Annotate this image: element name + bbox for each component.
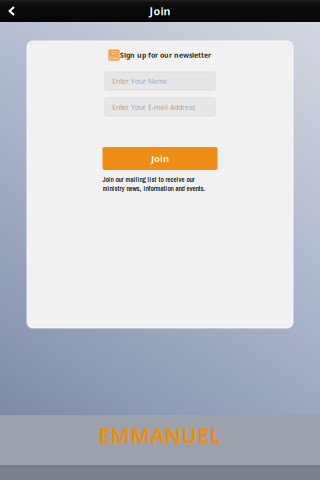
staticText: Join our mailing list to receive our [102, 175, 194, 184]
staticText: Join [149, 4, 170, 18]
staticText: Join [151, 152, 169, 165]
button[interactable]: Back [0, 0, 24, 22]
staticText: ministry news, information and events. [102, 184, 205, 193]
button[interactable]: Join [102, 147, 217, 170]
staticText: Sign up for our newsletter [120, 50, 211, 60]
staticText: Enter Your Name [112, 76, 167, 86]
staticText: Enter Your E-mail Address [112, 102, 195, 112]
staticText: EMMANUEL [98, 421, 221, 449]
